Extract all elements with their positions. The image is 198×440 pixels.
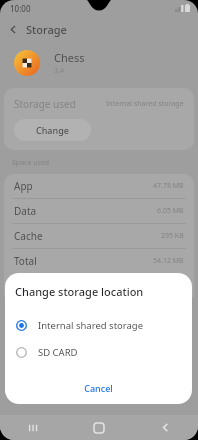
staticText: Chess (54, 50, 85, 65)
button[interactable]: Data (4, 199, 194, 224)
staticText: Change storage location (15, 284, 144, 299)
staticText: Cancel (84, 382, 113, 394)
staticText: Storage used (14, 97, 76, 111)
staticText: 6.05 MB (157, 206, 184, 216)
staticText: Internal shared storage (38, 319, 144, 332)
staticText: Total (14, 254, 37, 268)
staticText: 10:00 (10, 3, 31, 14)
button[interactable]: Navigate up (0, 16, 26, 42)
staticText: App (14, 179, 33, 193)
button[interactable] (4, 273, 194, 297)
button[interactable]: Home (66, 415, 132, 440)
staticText: 295 KB (161, 231, 184, 241)
button[interactable]: Back (132, 415, 198, 440)
staticText: Space used (12, 158, 50, 168)
button[interactable]: Change (14, 119, 91, 141)
button[interactable]: Internal shared storage (5, 312, 192, 339)
staticText: Internal shared storage (106, 99, 184, 109)
button[interactable]: App (4, 174, 194, 199)
staticText: 47.78 MB (153, 181, 184, 191)
staticText: Change (36, 124, 69, 136)
staticText: 3.4 (54, 66, 64, 76)
staticText: Cache (14, 229, 43, 243)
button[interactable]: Cancel (74, 379, 123, 397)
staticText: 54.12 MB (153, 256, 184, 266)
button[interactable]: Total (4, 249, 194, 273)
button[interactable]: SD CARD (5, 339, 192, 366)
button[interactable]: Cache (4, 224, 194, 249)
button[interactable]: Recent apps (0, 415, 66, 440)
staticText: Data (14, 204, 37, 218)
staticText: Storage (26, 22, 67, 37)
staticText: SD CARD (38, 346, 78, 359)
